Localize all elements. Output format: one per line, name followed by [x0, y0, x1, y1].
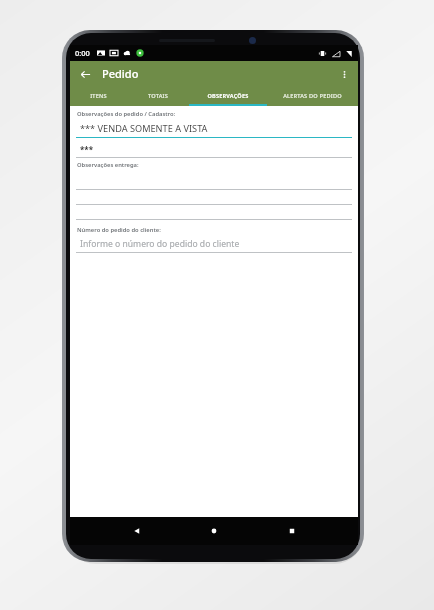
- button[interactable]: Recent apps: [281, 520, 303, 542]
- staticText: Pedido: [102, 66, 139, 81]
- staticText: Observações entrega:: [77, 161, 139, 169]
- button[interactable]: Back: [126, 520, 148, 542]
- button[interactable]: *** VENDA SOMENTE A VISTA: [76, 122, 352, 138]
- staticText: ITENS: [90, 92, 107, 100]
- button[interactable]: Home: [203, 520, 225, 542]
- staticText: Número do pedido do cliente:: [77, 226, 161, 234]
- staticText: *** VENDA SOMENTE A VISTA: [80, 122, 208, 135]
- button[interactable]: [76, 195, 352, 205]
- staticText: ALERTAS DO PEDIDO: [283, 92, 342, 100]
- staticText: Informe o número do pedido do cliente: [80, 238, 240, 250]
- staticText: ***: [80, 144, 94, 155]
- button[interactable]: ITENS: [70, 86, 127, 106]
- staticText: Observações do pedido / Cadastro:: [77, 110, 176, 118]
- button[interactable]: OBSERVAÇÕES: [189, 86, 267, 106]
- button[interactable]: ***: [76, 144, 352, 158]
- staticText: TOTAIS: [148, 92, 168, 100]
- staticText: 0:00: [75, 48, 90, 58]
- button[interactable]: More options: [334, 64, 354, 84]
- button[interactable]: Back: [75, 64, 95, 84]
- button[interactable]: TOTAIS: [127, 86, 189, 106]
- button[interactable]: [76, 210, 352, 220]
- button[interactable]: Informe o número do pedido do cliente: [76, 238, 352, 253]
- button[interactable]: [76, 180, 352, 190]
- button[interactable]: ALERTAS DO PEDIDO: [267, 86, 358, 106]
- staticText: OBSERVAÇÕES: [207, 92, 249, 100]
